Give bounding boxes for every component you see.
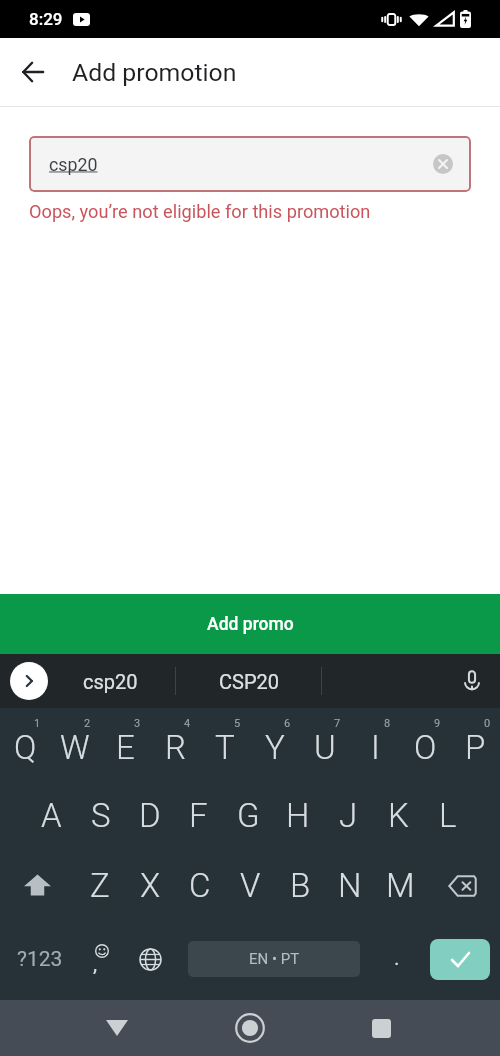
button[interactable]: Back [10,48,58,96]
staticText: 1 [34,717,41,730]
staticText: ?123 [17,947,63,972]
staticText: Y [265,728,285,767]
staticText: C [189,866,211,905]
staticText: E [116,728,135,767]
button[interactable]: Z [75,848,125,918]
staticText: 5 [234,717,241,730]
button[interactable]: EN • PT [188,941,360,977]
button[interactable]: ?123 [0,918,80,1000]
button[interactable]: Change language [125,918,175,1000]
button[interactable]: X [125,848,175,918]
staticText: 0 [484,717,491,730]
staticText: 7 [334,717,341,730]
staticText: M [386,866,415,905]
staticText: J [339,796,358,835]
staticText: R [165,728,186,767]
staticText: P [465,728,486,767]
button[interactable]: H [273,778,323,848]
staticText: csp20 [49,154,98,175]
button[interactable]: csp20 [50,654,170,708]
button[interactable]: I [350,708,400,778]
staticText: D [139,796,161,835]
button[interactable]: W [50,708,100,778]
button[interactable]: K [373,778,423,848]
staticText: K [388,796,409,835]
button[interactable]: Voice input [452,661,492,701]
staticText: , [93,952,98,977]
staticText: Add promotion [72,58,237,87]
button[interactable]: C [175,848,225,918]
button[interactable]: Add promo [0,594,500,654]
staticText: O [414,728,437,767]
staticText: T [215,728,235,767]
staticText: Add promo [207,614,294,635]
staticText: S [91,796,111,835]
button[interactable]: V [225,848,275,918]
button[interactable]: Recents [349,1000,413,1056]
staticText: X [140,866,161,905]
button[interactable]: Clear text [428,149,458,179]
button[interactable]: csp20 [29,136,471,192]
button[interactable]: G [223,778,273,848]
staticText: EN • PT [249,950,300,968]
staticText: 9 [434,717,441,730]
staticText: N [338,866,362,905]
staticText: 8 [384,717,391,730]
staticText: Z [90,866,110,905]
button[interactable]: B [275,848,325,918]
button[interactable]: R [150,708,200,778]
button[interactable]: . [372,918,422,1000]
staticText: 6 [284,717,291,730]
staticText: Q [14,728,37,767]
button[interactable]: Backspace [425,848,500,918]
button[interactable]: T [200,708,250,778]
button[interactable]: J [323,778,373,848]
button[interactable]: E [100,708,150,778]
staticText: CSP20 [219,670,279,693]
button[interactable]: A [27,778,76,848]
staticText: V [240,866,261,905]
staticText: 8:29 [29,9,63,29]
button[interactable]: Home [218,1000,282,1056]
button[interactable]: N [325,848,375,918]
button[interactable]: Y [250,708,300,778]
button[interactable]: S [76,778,125,848]
staticText: . [394,946,400,971]
staticText: L [439,796,457,835]
staticText: B [290,866,311,905]
staticText: F [189,796,208,835]
staticText: 3 [134,717,141,730]
button[interactable]: Done [430,939,490,980]
staticText: U [314,728,336,767]
button[interactable]: Shift [0,848,75,918]
button[interactable]: Emoji and comma [75,918,125,1000]
staticText: H [286,796,310,835]
staticText: W [60,728,90,767]
staticText: G [237,796,260,835]
staticText: 4 [184,717,191,730]
button[interactable]: Back [85,1000,149,1056]
button[interactable]: U [300,708,350,778]
staticText: Oops, you’re not eligible for this promo… [29,201,371,222]
button[interactable]: F [174,778,223,848]
staticText: csp20 [83,670,138,693]
staticText: I [371,728,380,767]
button[interactable]: Expand suggestions [10,662,48,700]
button[interactable]: L [423,778,473,848]
staticText: A [41,796,62,835]
button[interactable]: P [450,708,500,778]
button[interactable]: D [125,778,174,848]
staticText: 2 [84,717,91,730]
button[interactable]: M [375,848,425,918]
button[interactable]: O [400,708,450,778]
button[interactable]: Q [0,708,50,778]
button[interactable]: CSP20 [189,654,309,708]
